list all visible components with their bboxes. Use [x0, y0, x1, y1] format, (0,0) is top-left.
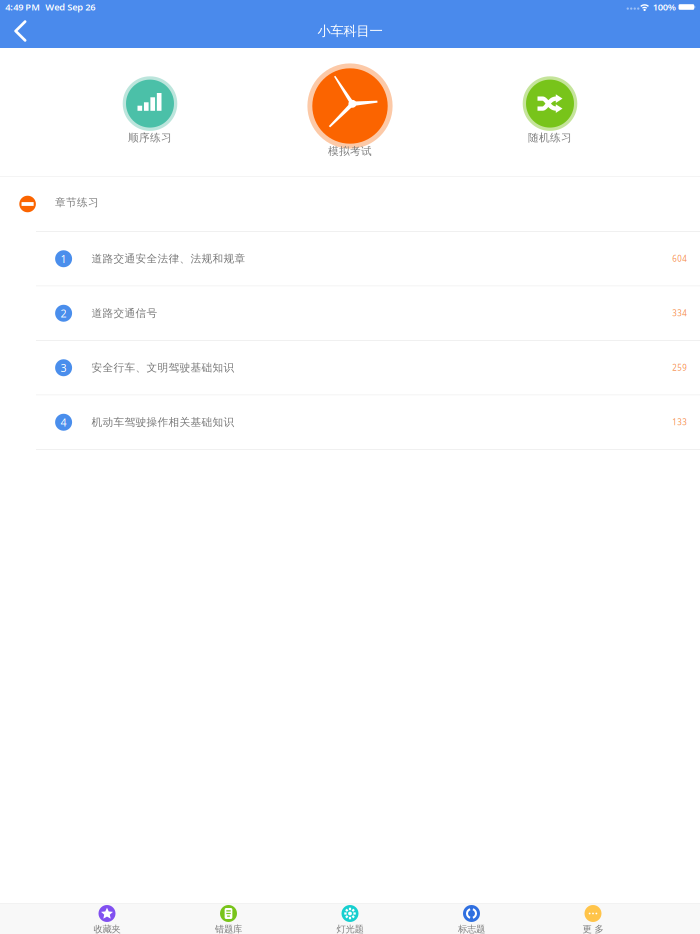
staticText: 2 — [61, 306, 67, 320]
button[interactable]: 更 多 — [550, 905, 636, 934]
staticText: 604 — [672, 253, 687, 264]
staticText: 259 — [672, 362, 687, 373]
staticText: 灯光题 — [336, 923, 363, 934]
staticText: 1 — [61, 252, 67, 266]
button[interactable]: 章节练习 — [0, 177, 700, 232]
staticText: 安全行车、文明驾驶基础知识 — [91, 361, 234, 374]
button[interactable]: 4 — [0, 395, 700, 450]
staticText: 更 多 — [582, 923, 603, 934]
staticText: 3 — [61, 361, 67, 375]
staticText: 收藏夹 — [93, 923, 120, 934]
staticText: Wed Sep 26 — [45, 1, 95, 13]
staticText: 334 — [672, 308, 687, 318]
staticText: 机动车驾驶操作相关基础知识 — [91, 416, 234, 429]
button[interactable]: 灯光题 — [307, 905, 393, 934]
button[interactable]: 标志题 — [428, 905, 514, 934]
button[interactable]: 错题库 — [185, 905, 271, 934]
button[interactable]: 收藏夹 — [64, 905, 150, 934]
button[interactable]: 2 — [0, 286, 700, 341]
staticText: 4:49 PM — [5, 1, 40, 13]
button[interactable]: 随机练习 — [450, 48, 650, 176]
staticText: 模拟考试 — [328, 144, 372, 158]
staticText: 道路交通安全法律、法规和规章 — [91, 252, 245, 265]
staticText: 顺序练习 — [128, 131, 172, 144]
staticText: 随机练习 — [528, 131, 572, 144]
staticText: 标志题 — [458, 923, 485, 934]
button[interactable]: 模拟考试 — [250, 48, 450, 176]
button[interactable]: Back — [0, 14, 38, 48]
button[interactable]: 3 — [0, 341, 700, 395]
button[interactable]: 顺序练习 — [50, 48, 250, 176]
staticText: 章节练习 — [55, 196, 99, 209]
staticText: 4 — [61, 415, 67, 429]
staticText: 100% — [653, 1, 676, 13]
staticText: 133 — [672, 417, 687, 427]
staticText: 小车科目一 — [317, 23, 382, 39]
staticText: 错题库 — [215, 923, 242, 934]
button[interactable]: 1 — [0, 232, 700, 286]
staticText: 道路交通信号 — [91, 307, 157, 320]
